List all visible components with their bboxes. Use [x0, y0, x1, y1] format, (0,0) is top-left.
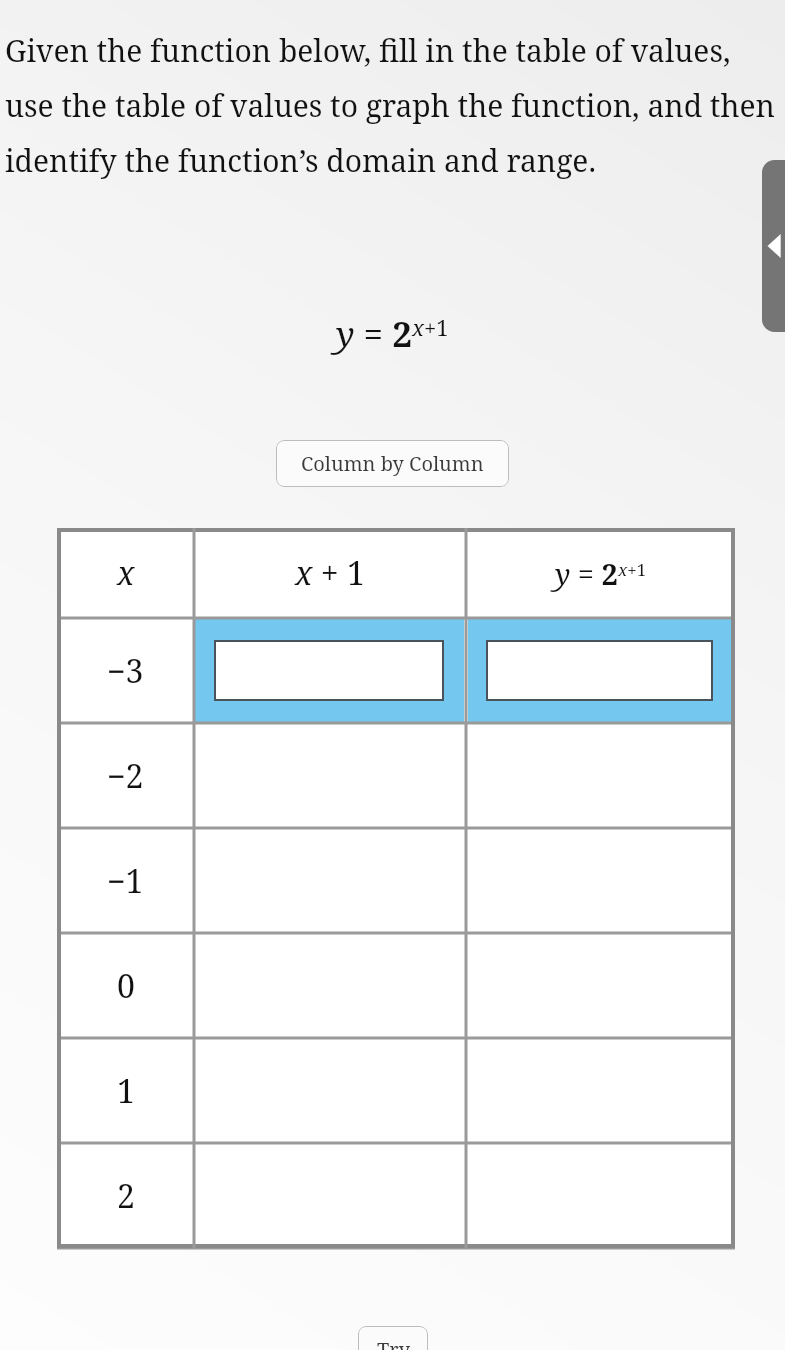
staticText: −2 [107, 754, 144, 798]
staticText: y = 2x+1 [336, 310, 449, 358]
button[interactable]: −3 [57, 618, 194, 723]
staticText: −1 [107, 859, 144, 903]
staticText: x [117, 551, 135, 595]
staticText: 1 [117, 1069, 135, 1113]
staticText: 2 [117, 1174, 135, 1218]
staticText: y = 2x+1 [555, 554, 647, 593]
button[interactable]: 2 [57, 1143, 194, 1248]
button[interactable]: Empty cell [466, 723, 735, 828]
staticText: −3 [107, 649, 144, 693]
button[interactable]: Empty cell [194, 933, 466, 1038]
button[interactable]: Empty cell [466, 828, 735, 933]
staticText: Column by Column [301, 450, 484, 477]
button[interactable]: 1 [57, 1038, 194, 1143]
button[interactable]: −1 [57, 828, 194, 933]
button[interactable]: Answer input [214, 640, 444, 701]
button[interactable]: Try [358, 1326, 428, 1350]
button[interactable]: Empty cell [466, 1143, 735, 1248]
button[interactable]: Empty cell [466, 933, 735, 1038]
button[interactable]: x [57, 528, 194, 618]
button[interactable]: −2 [57, 723, 194, 828]
button[interactable]: x + 1 [194, 528, 466, 618]
button[interactable]: Empty cell [194, 1143, 466, 1248]
button[interactable]: 0 [57, 933, 194, 1038]
staticText: Try [377, 1336, 410, 1350]
button[interactable]: Open panel [762, 160, 785, 332]
button[interactable]: Empty cell [194, 723, 466, 828]
button[interactable]: y = 2x+1 [466, 528, 735, 618]
button[interactable]: Empty cell [194, 828, 466, 933]
staticText: x + 1 [295, 551, 365, 595]
button[interactable]: Empty cell [194, 1038, 466, 1143]
button[interactable]: Answer input [486, 640, 713, 701]
staticText: 0 [117, 964, 135, 1008]
button[interactable]: Column by Column [276, 440, 509, 487]
button[interactable]: Empty cell [466, 1038, 735, 1143]
staticText: Given the function below, fill in the ta… [5, 30, 777, 181]
